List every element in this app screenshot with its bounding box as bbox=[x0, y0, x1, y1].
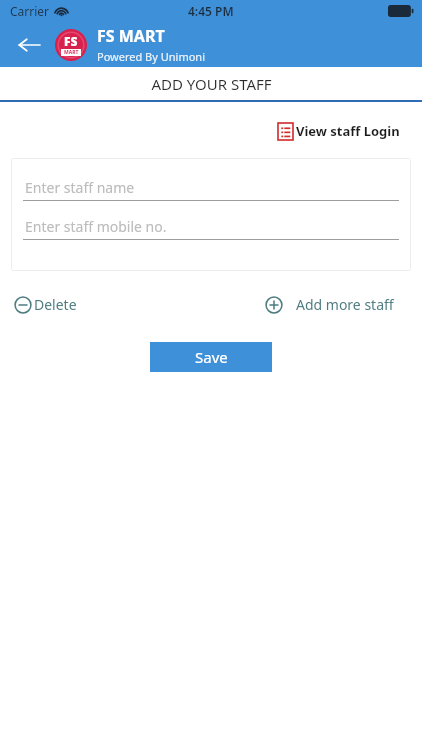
staticText: Carrier bbox=[10, 3, 50, 19]
staticText: Enter staff name bbox=[25, 178, 135, 197]
staticText: 4:45 PM bbox=[188, 3, 234, 19]
staticText: Save bbox=[195, 347, 228, 367]
staticText: Powered By Unimoni bbox=[97, 49, 205, 64]
staticText: View staff Login bbox=[296, 122, 400, 140]
staticText: FS bbox=[64, 33, 78, 49]
staticText: ADD YOUR STAFF bbox=[151, 74, 272, 94]
button[interactable]: Add more staff bbox=[263, 291, 410, 318]
staticText: Add more staff bbox=[296, 295, 394, 314]
staticText: Enter staff mobile no. bbox=[25, 217, 167, 236]
button[interactable]: Delete bbox=[12, 291, 79, 318]
button[interactable]: Enter staff mobile no. bbox=[23, 217, 399, 240]
staticText: MART bbox=[64, 49, 79, 56]
button[interactable]: Enter staff name bbox=[23, 178, 399, 201]
button[interactable]: Save bbox=[150, 342, 272, 372]
staticText: FS MART bbox=[97, 25, 165, 47]
button[interactable]: Back bbox=[14, 30, 44, 60]
button[interactable]: View staff Login bbox=[274, 118, 404, 144]
staticText: Delete bbox=[34, 295, 77, 314]
